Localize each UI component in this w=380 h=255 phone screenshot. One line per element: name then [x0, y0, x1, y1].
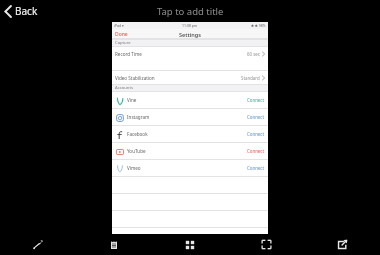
staticText: Accounts — [115, 85, 133, 91]
button[interactable]: Grid — [169, 234, 211, 255]
button[interactable]: Vine — [112, 92, 268, 108]
staticText: Instagram — [127, 114, 150, 120]
staticText: YouTube — [127, 148, 146, 154]
staticText: Capture — [115, 40, 131, 46]
staticText: Facebook — [127, 131, 148, 137]
staticText: iPad ▾ — [114, 23, 124, 28]
button[interactable]: Facebook — [112, 126, 268, 142]
button[interactable]: Crop — [245, 234, 287, 255]
button[interactable]: Share — [321, 234, 363, 255]
button[interactable]: Tap to add title — [147, 2, 234, 21]
staticText: Record Time — [115, 51, 142, 57]
staticText: 60 sec — [247, 51, 260, 57]
staticText: 11:08 pm — [182, 23, 198, 28]
staticText: Back — [15, 4, 38, 18]
staticText: Settings — [179, 31, 201, 38]
button[interactable]: Done — [112, 30, 131, 39]
staticText: Standard — [241, 75, 260, 81]
staticText: Connect — [247, 165, 265, 171]
staticText: ✱ ✱ 98% — [251, 23, 266, 28]
button[interactable]: Back — [0, 1, 46, 21]
button[interactable]: Video Stabilization — [112, 71, 268, 84]
button[interactable]: Record Time — [112, 47, 268, 60]
button[interactable]: Adjust — [17, 234, 59, 255]
button[interactable]: Vimeo — [112, 160, 268, 176]
staticText: Connect — [247, 97, 265, 103]
staticText: Connect — [247, 131, 265, 137]
staticText: Connect — [247, 148, 265, 154]
staticText: Connect — [247, 114, 265, 120]
button[interactable]: Notes — [93, 234, 135, 255]
button[interactable]: Instagram — [112, 109, 268, 125]
staticText: Video Stabilization — [115, 75, 155, 81]
button[interactable]: YouTube — [112, 143, 268, 159]
staticText: Vimeo — [127, 165, 141, 171]
staticText: Vine — [127, 97, 137, 103]
